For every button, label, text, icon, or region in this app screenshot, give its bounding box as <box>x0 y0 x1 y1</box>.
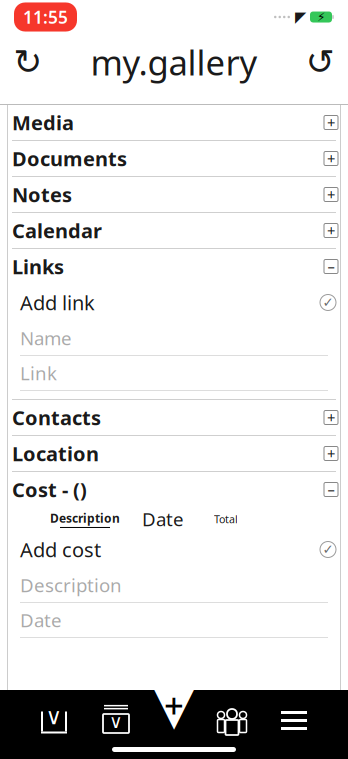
staticText: Links <box>12 253 64 280</box>
staticText: Date <box>142 507 184 531</box>
staticText: ◤ <box>295 9 306 25</box>
staticText: 11:55 <box>23 5 68 28</box>
button[interactable]: Description <box>0 568 348 603</box>
button[interactable]: Links <box>0 249 348 284</box>
button[interactable]: Expand section <box>318 217 344 243</box>
button[interactable]: Expand section <box>318 404 344 430</box>
button[interactable]: Location <box>0 436 348 471</box>
button[interactable]: Add link <box>0 284 348 321</box>
staticText: – <box>327 257 334 276</box>
staticText: ∨ <box>45 704 62 729</box>
staticText: + <box>327 113 335 132</box>
button[interactable]: Documents <box>0 141 348 176</box>
staticText: Link <box>20 361 57 385</box>
staticText: + <box>164 682 184 728</box>
staticText: ▼ <box>151 669 196 736</box>
staticText: Date <box>20 608 62 632</box>
button[interactable]: Confirm <box>314 535 342 563</box>
staticText: Location <box>12 440 99 467</box>
staticText: + <box>327 149 335 168</box>
button[interactable]: Media <box>0 105 348 140</box>
button[interactable]: Collapse section <box>318 253 344 279</box>
button[interactable]: Contacts <box>0 400 348 435</box>
staticText: Add link <box>20 289 95 316</box>
staticText: ↺ <box>305 42 334 82</box>
staticText: + <box>327 185 335 204</box>
staticText: Total <box>214 512 238 526</box>
button[interactable]: Inbox <box>23 695 85 745</box>
button[interactable]: Confirm <box>314 288 342 316</box>
button[interactable]: Collapse section <box>318 476 344 502</box>
staticText: ⚡︎ <box>317 10 325 24</box>
staticText: Contacts <box>12 404 101 431</box>
staticText: Documents <box>12 145 127 172</box>
button[interactable]: Notes <box>0 177 348 212</box>
button[interactable]: Calendar <box>0 213 348 248</box>
button[interactable]: Cost - () <box>0 472 348 507</box>
button[interactable]: Expand section <box>318 440 344 466</box>
button[interactable]: Expand section <box>318 181 344 207</box>
button[interactable]: Mail <box>85 695 147 745</box>
staticText: my.gallery <box>90 39 257 85</box>
staticText: Notes <box>12 181 72 208</box>
staticText: Add cost <box>20 536 101 563</box>
button[interactable]: Date <box>0 603 348 638</box>
staticText: ↻ <box>13 42 42 82</box>
button[interactable]: Add cost <box>0 531 348 568</box>
staticText: Description <box>50 510 120 526</box>
button[interactable]: Contacts <box>201 695 263 745</box>
staticText: ✓ <box>322 295 333 310</box>
button[interactable]: Undo <box>298 40 342 84</box>
button[interactable]: Expand section <box>318 109 344 135</box>
button[interactable]: Expand section <box>318 145 344 171</box>
button[interactable]: Menu <box>263 695 325 745</box>
button[interactable]: Link <box>0 356 348 391</box>
staticText: + <box>327 221 335 240</box>
staticText: + <box>327 408 335 427</box>
staticText: ✓ <box>322 542 333 557</box>
staticText: + <box>327 444 335 463</box>
staticText: ∨ <box>109 711 123 732</box>
staticText: Name <box>20 326 72 350</box>
staticText: Media <box>12 109 74 136</box>
button[interactable]: Add <box>152 690 196 720</box>
staticText: Calendar <box>12 217 102 244</box>
staticText: Description <box>20 573 122 597</box>
button[interactable]: Redo <box>6 40 50 84</box>
staticText: Cost - () <box>12 476 87 503</box>
button[interactable]: Name <box>0 321 348 356</box>
staticText: – <box>327 480 334 499</box>
